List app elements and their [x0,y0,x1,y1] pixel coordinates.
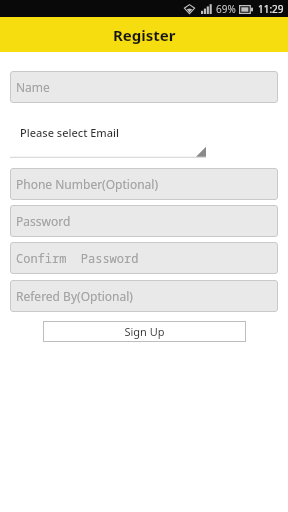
other: Cellular signal [201,4,212,14]
other: Wi-Fi signal [184,4,195,14]
button[interactable]: Password [10,205,278,237]
staticText: Please select Email [20,125,119,140]
staticText: Register [113,25,176,45]
staticText: Name [16,79,50,95]
button[interactable]: Name [10,71,278,103]
staticText: Sign Up [124,324,165,339]
button[interactable]: Refered By(Optional) [10,280,278,312]
staticText: Confirm Password [16,250,139,266]
button[interactable]: Phone Number(Optional) [10,168,278,200]
button[interactable]: Please select Email [10,125,278,158]
staticText: 11:29 [258,2,284,16]
staticText: Password [16,213,71,229]
staticText: 69% [216,2,236,16]
staticText: Phone Number(Optional) [16,176,158,192]
button[interactable]: Confirm Password [10,242,278,274]
staticText: Refered By(Optional) [16,288,133,304]
other: Battery 69 percent [239,5,253,14]
button[interactable]: Sign Up [43,321,246,342]
